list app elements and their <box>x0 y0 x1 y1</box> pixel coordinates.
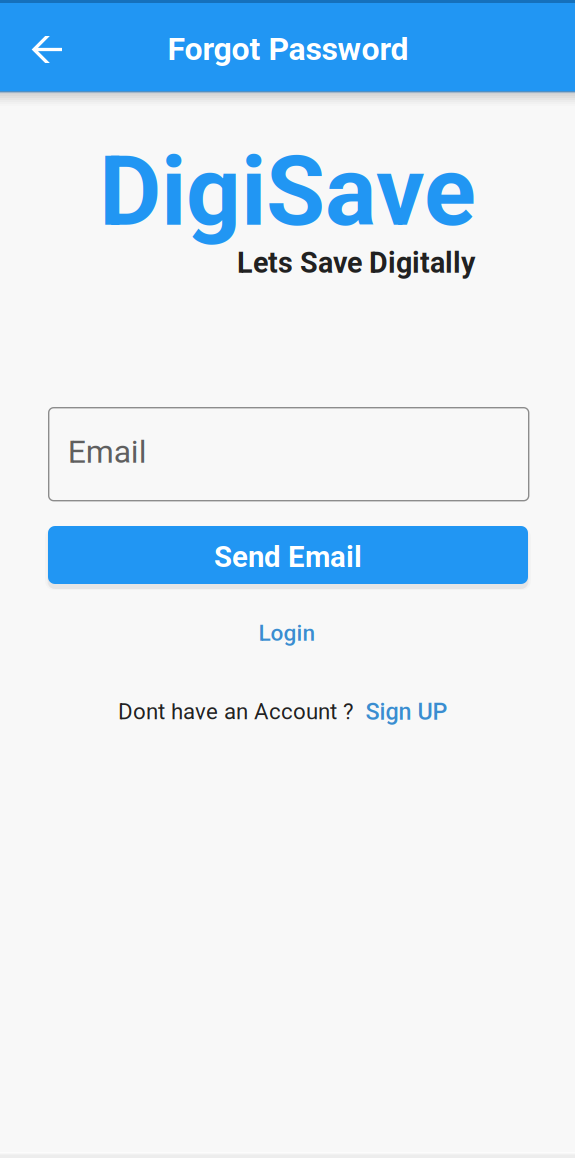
button[interactable]: Email <box>49 408 529 501</box>
staticText: Email <box>68 433 147 470</box>
staticText: Sign UP <box>365 698 447 725</box>
button[interactable]: Login <box>227 613 347 653</box>
staticText: Dont have an Account ? <box>118 699 354 725</box>
button[interactable]: Back <box>11 6 85 93</box>
button[interactable]: Sign UP <box>365 698 447 725</box>
button[interactable]: Send Email <box>48 526 528 584</box>
staticText: Forgot Password <box>167 30 408 68</box>
staticText: Lets Save Digitally <box>237 246 475 280</box>
staticText: Login <box>258 620 315 646</box>
staticText: Send Email <box>214 540 362 574</box>
staticText: DigiSave <box>99 136 476 248</box>
